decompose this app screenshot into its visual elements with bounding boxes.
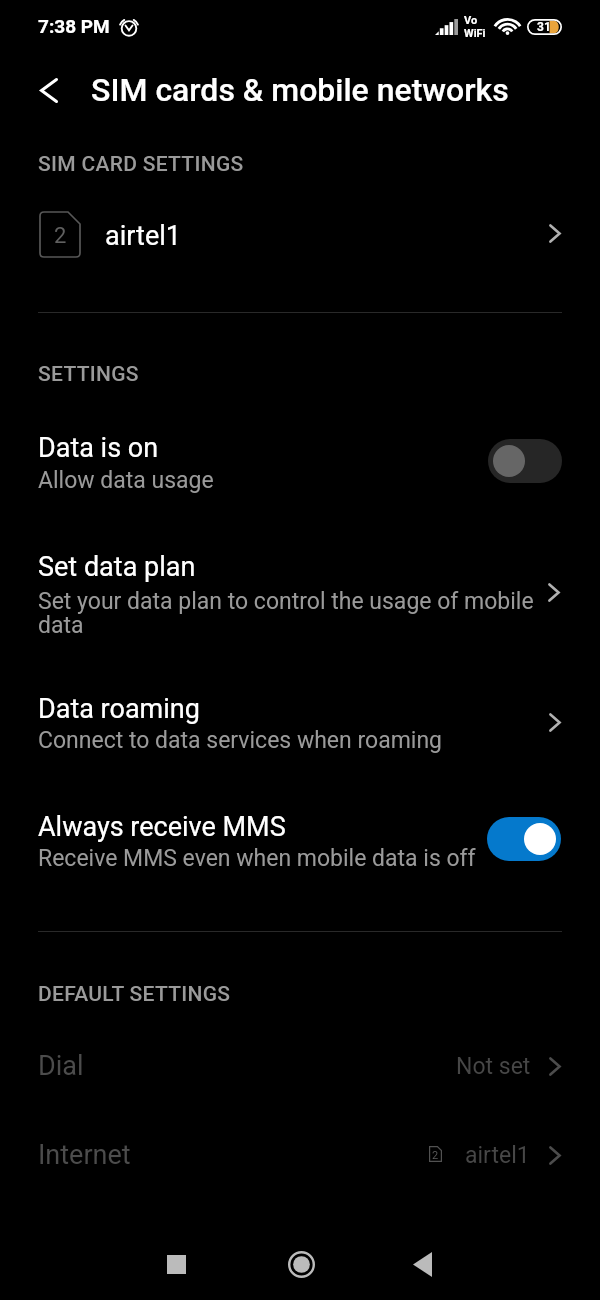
staticText: 31 [537,20,551,34]
staticText: Always receive MMS [38,811,286,843]
staticText: SETTINGS [38,362,139,387]
staticText: Internet [38,1139,131,1171]
button[interactable]: Set data plan [0,538,600,650]
staticText: 2 [432,1149,439,1162]
staticText: Allow data usage [38,467,214,494]
staticText: SIM CARD SETTINGS [38,152,244,177]
staticText: Set your data plan to control the usage … [38,588,540,639]
staticText: airtel1 [105,220,181,252]
button[interactable]: Home [271,1234,331,1294]
button[interactable]: Data is on [0,412,600,508]
staticText: Receive MMS even when mobile data is off [38,845,476,872]
staticText: DEFAULT SETTINGS [38,982,231,1007]
button[interactable]: Dial [0,1025,600,1109]
staticText: Data roaming [38,693,200,725]
staticText: Dial [38,1050,84,1082]
button[interactable]: 2 [0,190,600,278]
button[interactable]: Back [392,1234,452,1294]
staticText: Connect to data services when roaming [38,727,443,754]
staticText: 2 [54,223,67,249]
staticText: WiFi [464,27,486,40]
staticText: 7:38 PM [38,15,110,37]
button[interactable]: Recent apps [146,1234,206,1294]
button[interactable]: Switch on [487,817,561,861]
button[interactable]: Data roaming [0,674,600,770]
staticText: Data is on [38,432,159,464]
button[interactable]: Always receive MMS [0,792,600,888]
staticText: SIM cards & mobile networks [91,71,509,109]
button[interactable]: Back [28,70,69,111]
staticText: Vo [464,14,478,27]
staticText: Not set [456,1053,531,1080]
staticText: Set data plan [38,551,196,583]
button[interactable]: Switch off [488,439,562,483]
button[interactable]: Internet [0,1114,600,1198]
staticText: airtel1 [465,1142,530,1169]
